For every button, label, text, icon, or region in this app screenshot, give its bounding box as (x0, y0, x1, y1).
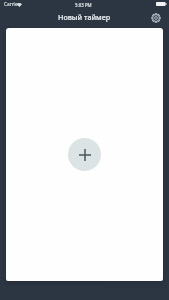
staticText: 5:03 PM (75, 2, 92, 8)
staticText: Carrier (4, 1, 20, 7)
button[interactable]: Settings (148, 10, 164, 26)
staticText: Новый таймер (58, 12, 111, 22)
button[interactable]: Add timer (68, 138, 101, 171)
